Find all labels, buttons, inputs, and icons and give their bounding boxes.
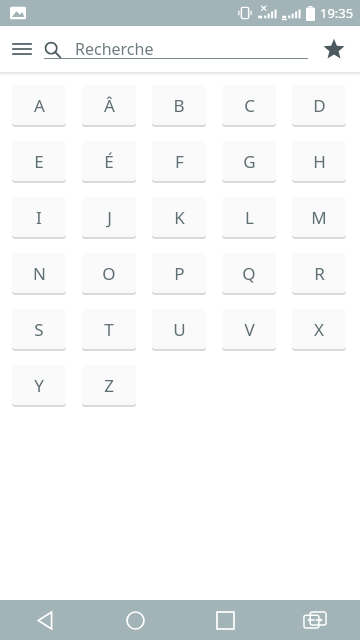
button[interactable]: F: [152, 141, 206, 181]
button[interactable]: U: [152, 309, 206, 349]
button[interactable]: Â: [82, 85, 136, 125]
button[interactable]: K: [152, 197, 206, 237]
staticText: L: [245, 206, 254, 229]
staticText: T: [104, 318, 114, 341]
button[interactable]: H: [292, 141, 346, 181]
staticText: S: [34, 318, 44, 341]
button[interactable]: D: [292, 85, 346, 125]
button[interactable]: G: [222, 141, 276, 181]
button[interactable]: Switch app: [270, 600, 360, 640]
button[interactable]: N: [12, 253, 66, 293]
staticText: Y: [34, 374, 44, 397]
button[interactable]: S: [12, 309, 66, 349]
staticText: A: [34, 94, 45, 117]
button[interactable]: B: [152, 85, 206, 125]
staticText: P: [174, 262, 185, 285]
button[interactable]: Menu: [0, 27, 44, 71]
staticText: M: [311, 206, 327, 229]
staticText: C: [244, 94, 255, 117]
staticText: Â: [104, 94, 115, 117]
staticText: U: [173, 318, 186, 341]
button[interactable]: Z: [82, 365, 136, 405]
button[interactable]: X: [292, 309, 346, 349]
button[interactable]: V: [222, 309, 276, 349]
button[interactable]: Q: [222, 253, 276, 293]
staticText: I: [36, 206, 42, 229]
button[interactable]: Y: [12, 365, 66, 405]
button[interactable]: Back: [0, 600, 90, 640]
staticText: Q: [242, 262, 256, 285]
button[interactable]: M: [292, 197, 346, 237]
staticText: H: [313, 150, 326, 173]
staticText: O: [102, 262, 116, 285]
staticText: J: [107, 206, 112, 229]
button[interactable]: P: [152, 253, 206, 293]
button[interactable]: I: [12, 197, 66, 237]
button[interactable]: Favoris: [308, 26, 360, 72]
button[interactable]: Home: [90, 600, 180, 640]
button[interactable]: O: [82, 253, 136, 293]
staticText: B: [173, 94, 185, 117]
staticText: E: [34, 150, 44, 173]
button[interactable]: E: [12, 141, 66, 181]
staticText: É: [104, 150, 114, 173]
button[interactable]: É: [82, 141, 136, 181]
staticText: R: [314, 262, 325, 285]
staticText: V: [244, 318, 255, 341]
button[interactable]: L: [222, 197, 276, 237]
button[interactable]: A: [12, 85, 66, 125]
staticText: F: [175, 150, 184, 173]
staticText: X: [314, 318, 324, 341]
staticText: K: [174, 206, 185, 229]
button[interactable]: C: [222, 85, 276, 125]
button[interactable]: R: [292, 253, 346, 293]
button[interactable]: T: [82, 309, 136, 349]
button[interactable]: Recent apps: [180, 600, 270, 640]
button[interactable]: Recherche: [44, 26, 308, 72]
staticText: G: [243, 150, 256, 173]
staticText: 19:35: [320, 4, 354, 22]
staticText: D: [313, 94, 326, 117]
staticText: N: [33, 262, 46, 285]
button[interactable]: J: [82, 197, 136, 237]
staticText: Recherche: [75, 38, 154, 60]
staticText: Z: [104, 374, 114, 397]
